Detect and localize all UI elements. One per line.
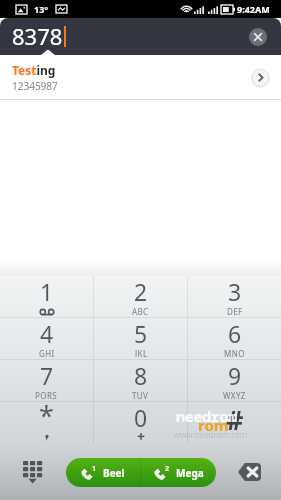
staticText: 9	[228, 360, 242, 391]
staticText: Beel	[103, 466, 125, 480]
staticText: GHI	[39, 348, 55, 357]
button[interactable]: Contact details	[251, 68, 270, 87]
button[interactable]: Backspace	[232, 455, 266, 489]
staticText: TUV	[132, 390, 149, 399]
button[interactable]: 7	[0, 360, 93, 401]
button[interactable]: 1	[66, 458, 140, 487]
staticText: *	[39, 397, 54, 434]
staticText: MNO	[224, 348, 245, 357]
staticText: 8	[134, 360, 148, 391]
staticText: 2	[134, 276, 148, 307]
button[interactable]: 3	[188, 276, 281, 317]
staticText: needrom	[176, 406, 237, 426]
button[interactable]: 9	[188, 360, 281, 401]
button[interactable]: 8	[94, 360, 187, 401]
staticText: 0	[134, 402, 148, 433]
staticText: 12345987	[12, 79, 58, 93]
button[interactable]: 2	[141, 458, 216, 487]
button[interactable]: Show keypad	[16, 455, 48, 487]
staticText: Testing	[12, 62, 56, 78]
staticText: JKL	[135, 348, 148, 357]
button[interactable]: Clear	[249, 28, 267, 46]
staticText: DEF	[227, 306, 243, 315]
button[interactable]: 0	[94, 402, 187, 443]
button[interactable]: Testing	[0, 55, 281, 99]
staticText: 2	[165, 464, 170, 474]
staticText: 5	[134, 318, 148, 349]
staticText: #	[226, 401, 244, 438]
button[interactable]: 6	[188, 318, 281, 359]
staticText: 4	[40, 318, 54, 349]
button[interactable]: 1	[0, 276, 93, 317]
button[interactable]: 8378	[0, 18, 281, 55]
staticText: WXYZ	[223, 390, 246, 399]
staticText: 1	[40, 276, 54, 307]
staticText: rom	[198, 415, 229, 435]
staticText: 3	[228, 276, 242, 307]
staticText: 6	[228, 318, 242, 349]
staticText: 9:42AM	[237, 3, 270, 15]
staticText: 13°	[34, 3, 49, 15]
button[interactable]: 5	[94, 318, 187, 359]
staticText: 1	[92, 464, 97, 474]
button[interactable]: 4	[0, 318, 93, 359]
staticText: www.needrom.com	[174, 429, 248, 440]
staticText: ABC	[132, 306, 149, 315]
staticText: PQRS	[35, 390, 58, 399]
staticText: 8378	[12, 21, 63, 51]
staticText: Mega	[176, 466, 204, 480]
button[interactable]: 2	[94, 276, 187, 317]
staticText: 7	[40, 360, 54, 391]
button[interactable]: #	[188, 402, 281, 443]
button[interactable]: *	[0, 402, 93, 443]
